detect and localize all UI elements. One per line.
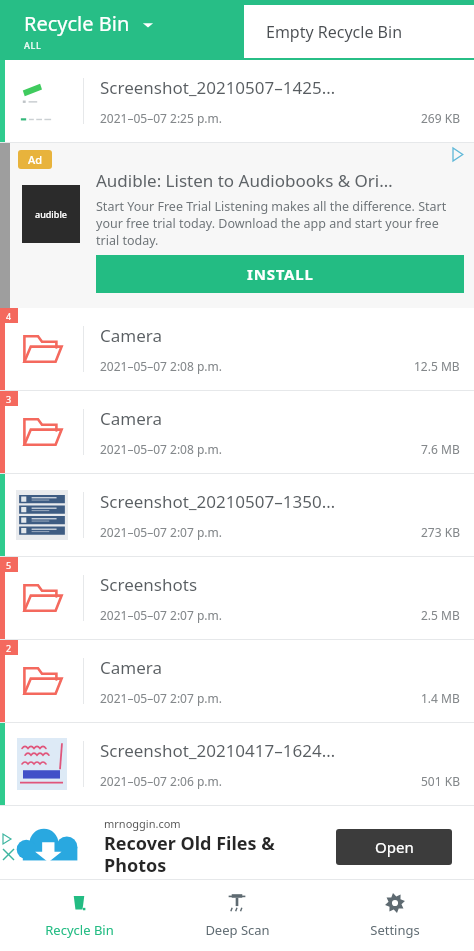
button[interactable]: 5 xyxy=(0,557,474,640)
staticText: 7.6 MB xyxy=(421,441,460,457)
staticText: 5 xyxy=(6,559,12,571)
staticText: 3 xyxy=(6,393,12,405)
staticText: 2021–05–07 2:08 p.m. xyxy=(100,358,222,374)
staticText: 4 xyxy=(6,310,12,322)
staticText: 2021–05–07 2:06 p.m. xyxy=(100,773,222,789)
staticText: Recycle Bin xyxy=(45,921,114,939)
staticText: Recycle Bin xyxy=(24,10,130,37)
staticText: 2 xyxy=(6,642,12,654)
button[interactable]: mrnoggin.com xyxy=(0,815,474,879)
button[interactable]: Settings xyxy=(316,879,474,951)
staticText: 2021–05–07 2:07 p.m. xyxy=(100,690,222,706)
staticText: 1.4 MB xyxy=(421,690,460,706)
staticText: mrnoggin.com xyxy=(104,816,181,831)
staticText: Audible: Listen to Audiobooks & Ori… xyxy=(96,169,393,192)
button[interactable]: 2 xyxy=(0,640,474,723)
staticText: Open xyxy=(375,837,414,857)
staticText: 2.5 MB xyxy=(421,607,460,623)
staticText: Settings xyxy=(370,921,420,939)
button[interactable]: Open xyxy=(336,829,452,865)
staticText: 501 KB xyxy=(421,773,460,789)
staticText: Recover Old Files & Photos xyxy=(104,831,324,878)
staticText: Deep Scan xyxy=(205,921,270,939)
button[interactable]: Filter xyxy=(140,16,156,32)
staticText: ALL xyxy=(24,39,42,51)
staticText: Screenshot_20210417–1624… xyxy=(100,739,336,762)
staticText: 2021–05–07 2:07 p.m. xyxy=(100,607,222,623)
staticText: Screenshot_20210507–1350… xyxy=(100,490,336,513)
staticText: 12.5 MB xyxy=(414,358,460,374)
staticText: Empty Recycle Bin xyxy=(266,21,403,43)
staticText: 269 KB xyxy=(421,110,460,126)
staticText: Screenshots xyxy=(100,573,198,596)
button[interactable]: 3 xyxy=(0,391,474,474)
staticText: INSTALL xyxy=(247,264,314,284)
staticText: 2021–05–07 2:25 p.m. xyxy=(100,110,222,126)
staticText: Camera xyxy=(100,656,162,679)
button[interactable]: 4 xyxy=(0,308,474,391)
staticText: 2021–05–07 2:08 p.m. xyxy=(100,441,222,457)
staticText: Camera xyxy=(100,407,162,430)
staticText: audible xyxy=(35,208,67,220)
staticText: Camera xyxy=(100,324,162,347)
button[interactable]: Screenshot_20210417–1624… xyxy=(0,723,474,806)
staticText: Start Your Free Trial Listening makes al… xyxy=(96,198,464,249)
button[interactable]: Deep Scan xyxy=(158,879,316,951)
button[interactable]: INSTALL xyxy=(96,255,464,293)
button[interactable]: Empty Recycle Bin xyxy=(244,5,474,58)
staticText: Screenshot_20210507–1425… xyxy=(100,76,336,99)
staticText: 273 KB xyxy=(421,524,460,540)
staticText: Ad xyxy=(28,152,43,167)
staticText: 2021–05–07 2:07 p.m. xyxy=(100,524,222,540)
button[interactable]: Recycle Bin xyxy=(0,879,158,951)
button[interactable]: Screenshot_20210507–1425… xyxy=(0,60,474,143)
button[interactable]: Screenshot_20210507–1350… xyxy=(0,474,474,557)
